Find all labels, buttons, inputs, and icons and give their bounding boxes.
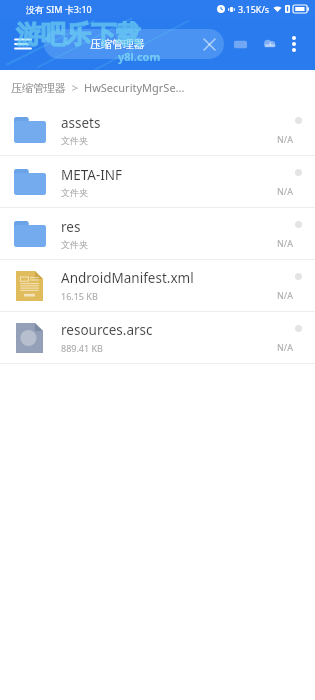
button[interactable]: 压缩管理器 [0, 70, 315, 104]
staticText: 压缩管理器 [11, 81, 66, 95]
staticText: 889.41 KB [61, 342, 103, 354]
button[interactable]: res [0, 208, 315, 259]
staticText: N/A [277, 237, 293, 249]
button[interactable]: More options [277, 27, 311, 61]
staticText: 16.15 KB [61, 290, 98, 302]
button[interactable]: resources.arsc [0, 312, 315, 363]
staticText: 3.15K/s [238, 3, 270, 15]
button[interactable]: Storage [228, 32, 252, 56]
button[interactable]: assets [0, 104, 315, 155]
staticText: N/A [277, 289, 293, 301]
button[interactable]: Select AndroidManifest.xml [290, 268, 306, 284]
staticText: AndroidManifest.xml [61, 269, 194, 287]
staticText: 文件夹 [61, 239, 88, 250]
staticText: y8l.com [118, 49, 161, 64]
staticText: 压缩管理器 [90, 37, 145, 51]
staticText: > [66, 80, 84, 95]
button[interactable]: 压缩管理器 [44, 29, 224, 59]
staticText: 文件夹 [61, 187, 88, 198]
button[interactable]: Select META-INF [290, 164, 306, 180]
staticText: N/A [277, 185, 293, 197]
staticText: resources.arsc [61, 321, 153, 339]
button[interactable]: META-INF [0, 156, 315, 207]
button[interactable]: Cloud [258, 32, 282, 56]
staticText: 游吧乐下载 [16, 19, 141, 50]
staticText: 文件夹 [61, 135, 88, 146]
button[interactable]: Clear [198, 33, 220, 55]
staticText: res [61, 218, 81, 236]
staticText: HwSecurityMgrSe... [84, 80, 185, 95]
button[interactable]: AndroidManifest.xml [0, 260, 315, 311]
button[interactable]: Select res [290, 216, 306, 232]
staticText: assets [61, 114, 101, 132]
button[interactable]: Select resources.arsc [290, 320, 306, 336]
staticText: N/A [277, 341, 293, 353]
staticText: META-INF [61, 166, 123, 184]
button[interactable]: Select assets [290, 112, 306, 128]
button[interactable]: Menu [6, 27, 40, 61]
staticText: 没有 SIM 卡3:10 [26, 3, 92, 15]
staticText: N/A [277, 133, 293, 145]
